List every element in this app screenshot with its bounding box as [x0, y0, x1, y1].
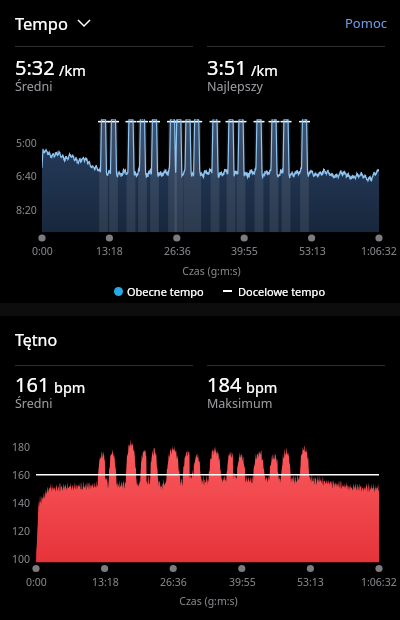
- staticText: 6:40: [16, 169, 37, 183]
- staticText: 5:32: [15, 54, 55, 81]
- staticText: /km: [59, 60, 86, 80]
- staticText: Czas (g:m:s): [179, 594, 238, 608]
- staticText: 39:55: [231, 244, 258, 258]
- staticText: 160: [12, 468, 31, 482]
- button[interactable]: 161: [15, 371, 193, 407]
- staticText: 13:18: [96, 244, 123, 258]
- staticText: 26:36: [164, 244, 191, 258]
- staticText: 3:51: [207, 54, 247, 81]
- staticText: Obecne tempo: [127, 284, 204, 298]
- staticText: Tempo: [15, 12, 68, 34]
- button[interactable]: Pomoc: [342, 12, 390, 34]
- staticText: /km: [251, 60, 278, 80]
- staticText: 100: [12, 552, 31, 566]
- staticText: Docelowe tempo: [238, 284, 326, 298]
- staticText: 1:06:32: [361, 575, 397, 589]
- button[interactable]: 184: [207, 371, 385, 407]
- staticText: 180: [12, 440, 31, 454]
- staticText: 26:36: [160, 575, 187, 589]
- staticText: 161: [15, 371, 50, 398]
- staticText: 8:20: [16, 203, 37, 217]
- button[interactable]: 5:32: [15, 54, 193, 90]
- staticText: bpm: [54, 377, 86, 397]
- staticText: 184: [207, 371, 242, 398]
- staticText: 120: [12, 524, 31, 538]
- button[interactable]: Docelowe tempo: [223, 284, 326, 298]
- button[interactable]: Change metric: [74, 13, 94, 33]
- staticText: 0:00: [26, 575, 47, 589]
- staticText: 13:18: [92, 575, 119, 589]
- staticText: Średni: [15, 395, 53, 412]
- staticText: Pomoc: [345, 14, 387, 32]
- staticText: 140: [12, 496, 31, 510]
- button[interactable]: 3:51: [207, 54, 385, 90]
- staticText: 39:55: [229, 575, 256, 589]
- staticText: 0:00: [32, 244, 53, 258]
- staticText: Średni: [15, 78, 53, 95]
- staticText: bpm: [246, 377, 278, 397]
- button[interactable]: Obecne tempo: [114, 284, 204, 298]
- staticText: 1:06:32: [361, 244, 397, 258]
- button[interactable]: Tętno: [15, 329, 58, 351]
- staticText: Najlepszy: [207, 78, 263, 95]
- staticText: 53:13: [299, 244, 326, 258]
- staticText: 53:13: [297, 575, 324, 589]
- staticText: Czas (g:m:s): [182, 264, 241, 278]
- staticText: 5:00: [16, 136, 37, 150]
- staticText: Maksimum: [207, 395, 273, 412]
